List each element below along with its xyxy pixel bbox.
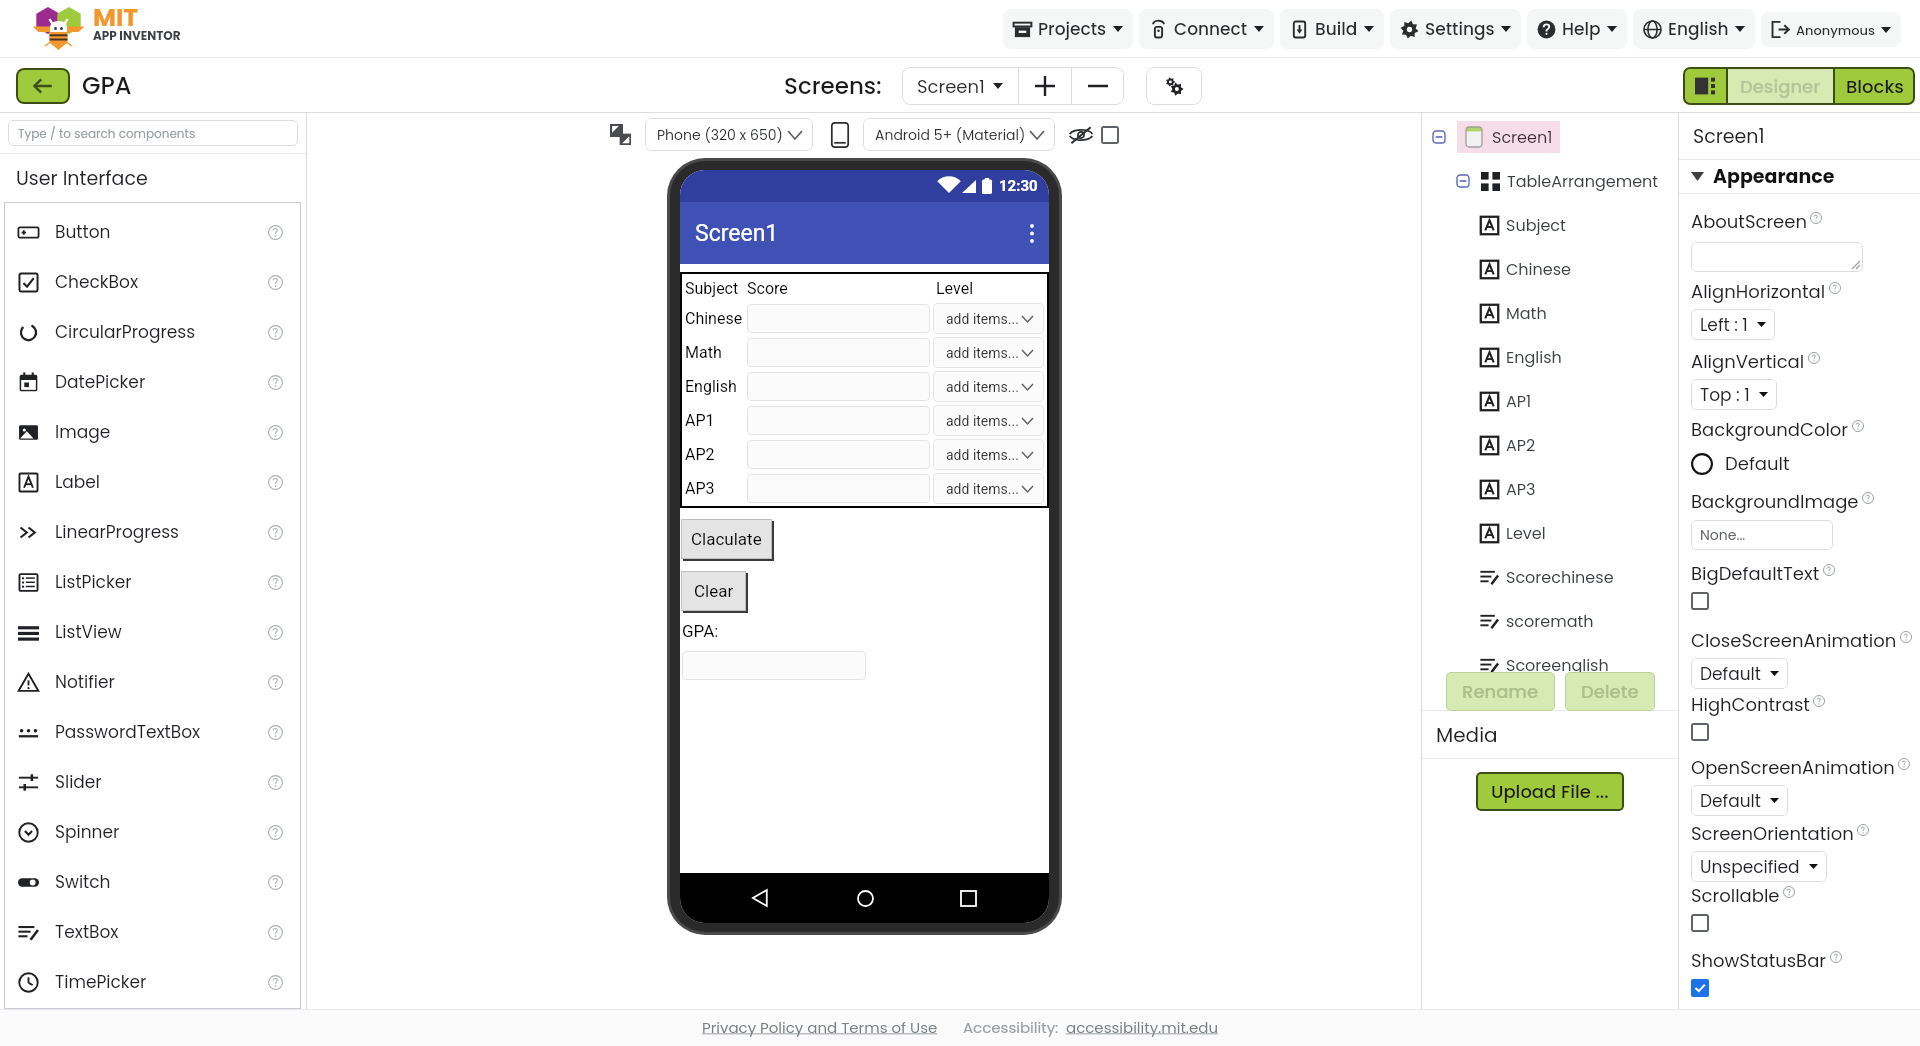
staticText: Math	[1506, 302, 1547, 324]
button[interactable]: Scorechinese	[1422, 555, 1678, 599]
button[interactable]	[747, 372, 930, 401]
button[interactable]: Delete	[1565, 672, 1655, 711]
staticText: Media	[1436, 721, 1498, 749]
staticText: Math	[685, 343, 722, 362]
button[interactable]: add items...	[933, 439, 1044, 470]
button[interactable]: Privacy Policy and Terms of Use	[702, 1017, 938, 1038]
button[interactable]: Switch	[4, 857, 301, 907]
button[interactable]: Unspecified	[1691, 851, 1827, 882]
button[interactable]: Screen1	[902, 67, 1018, 105]
button[interactable]: User Interface	[0, 154, 306, 202]
button[interactable]: Add screen	[1019, 67, 1071, 105]
button[interactable]: Chinese	[1422, 247, 1678, 291]
staticText: Screens:	[784, 70, 882, 102]
button[interactable]: Spinner	[4, 807, 301, 857]
button[interactable]: scoremath	[1422, 599, 1678, 643]
button[interactable]	[747, 406, 930, 435]
button[interactable]: Default	[1691, 785, 1788, 816]
button[interactable]: Math	[1422, 291, 1678, 335]
button[interactable]: AP3	[1422, 467, 1678, 511]
button[interactable]: Appearance	[1679, 160, 1920, 193]
button[interactable]: LinearProgress	[4, 507, 301, 557]
staticText: add items...	[946, 345, 1019, 361]
button[interactable]: Screen1	[1422, 115, 1678, 159]
button[interactable]: Remove screen	[1072, 67, 1124, 105]
button[interactable]: Projects	[1003, 9, 1133, 49]
staticText: English	[1668, 17, 1729, 41]
button[interactable]: None...	[1691, 520, 1833, 550]
button[interactable]: Scoreenglish	[1422, 643, 1678, 687]
button[interactable]: Unchecked	[1691, 914, 1709, 932]
button[interactable]: Rename	[1446, 672, 1555, 711]
button[interactable]: English	[1422, 335, 1678, 379]
button[interactable]: ListPicker	[4, 557, 301, 607]
button[interactable]: Top : 1	[1691, 379, 1777, 410]
button[interactable]: Left : 1	[1691, 309, 1775, 340]
button[interactable]: Unchecked	[1691, 723, 1709, 741]
staticText: Claculate	[691, 529, 762, 549]
button[interactable]: add items...	[933, 371, 1044, 402]
button[interactable]: Default	[1691, 451, 1790, 476]
button[interactable]: TableArrangement	[1422, 159, 1678, 203]
button[interactable]: Claculate	[681, 519, 772, 559]
button[interactable]: PasswordTextBox	[4, 707, 301, 757]
button[interactable]: AP2	[1422, 423, 1678, 467]
button[interactable]: Toggle panels	[1683, 67, 1726, 105]
button[interactable]: Anonymous	[1761, 12, 1901, 47]
button[interactable]	[747, 338, 930, 367]
button[interactable]: Designer	[1728, 67, 1833, 105]
staticText: add items...	[946, 481, 1019, 497]
button[interactable]: Label	[4, 457, 301, 507]
button[interactable]: Back	[739, 876, 783, 920]
staticText: English	[685, 377, 737, 396]
button[interactable]: English	[1633, 9, 1755, 49]
button[interactable]: TimePicker	[4, 957, 301, 1007]
button[interactable]	[747, 440, 930, 469]
staticText: Unspecified	[1700, 855, 1800, 879]
button[interactable]: add items...	[933, 337, 1044, 368]
button[interactable]: Settings	[1390, 9, 1521, 49]
button[interactable]	[747, 304, 930, 333]
button[interactable]: Type / to search components	[8, 120, 298, 146]
button[interactable]: CheckBox	[4, 257, 301, 307]
button[interactable]: add items...	[933, 303, 1044, 334]
button[interactable]: Show hidden components	[1067, 121, 1095, 149]
button[interactable]: Clear	[681, 571, 746, 611]
button[interactable]: ShowStatusBar checked	[1691, 979, 1709, 997]
staticText: Level	[1506, 522, 1546, 544]
button[interactable]: DatePicker	[4, 357, 301, 407]
button[interactable]: Default	[1691, 658, 1788, 689]
button[interactable]: Button	[4, 207, 301, 257]
button[interactable]	[1691, 242, 1863, 272]
button[interactable]: Back	[16, 68, 70, 104]
button[interactable]: ListView	[4, 607, 301, 657]
staticText: add items...	[946, 413, 1019, 429]
button[interactable]: TextBox	[4, 907, 301, 957]
button[interactable]: Android 5+ (Material)	[863, 118, 1055, 151]
button[interactable]: Blocks	[1835, 67, 1915, 105]
button[interactable]: Notifier	[4, 657, 301, 707]
button[interactable]: Subject	[1422, 203, 1678, 247]
button[interactable]: Slider	[4, 757, 301, 807]
button[interactable]: Build	[1280, 9, 1384, 49]
button[interactable]: Unchecked	[1691, 592, 1709, 610]
staticText: Designer	[1740, 74, 1821, 99]
button[interactable]: AP1	[1422, 379, 1678, 423]
button[interactable]: add items...	[933, 405, 1044, 436]
staticText: Rename	[1462, 679, 1539, 704]
button[interactable]: accessibility.mit.edu	[1066, 1017, 1219, 1038]
button[interactable]: Help	[1527, 9, 1627, 49]
button[interactable]: Checkbox	[1101, 126, 1119, 144]
button[interactable]: Home	[843, 876, 887, 920]
button[interactable]: Level	[1422, 511, 1678, 555]
button[interactable]: Connect	[1139, 9, 1274, 49]
button[interactable]: Project properties	[1146, 67, 1202, 105]
button[interactable]: Upload File ...	[1476, 772, 1624, 811]
button[interactable]	[682, 651, 866, 680]
button[interactable]: Image	[4, 407, 301, 457]
button[interactable]: Phone (320 x 650)	[645, 118, 813, 151]
button[interactable]: CircularProgress	[4, 307, 301, 357]
button[interactable]: Recents	[946, 876, 990, 920]
button[interactable]: add items...	[933, 473, 1044, 504]
button[interactable]	[747, 474, 930, 503]
